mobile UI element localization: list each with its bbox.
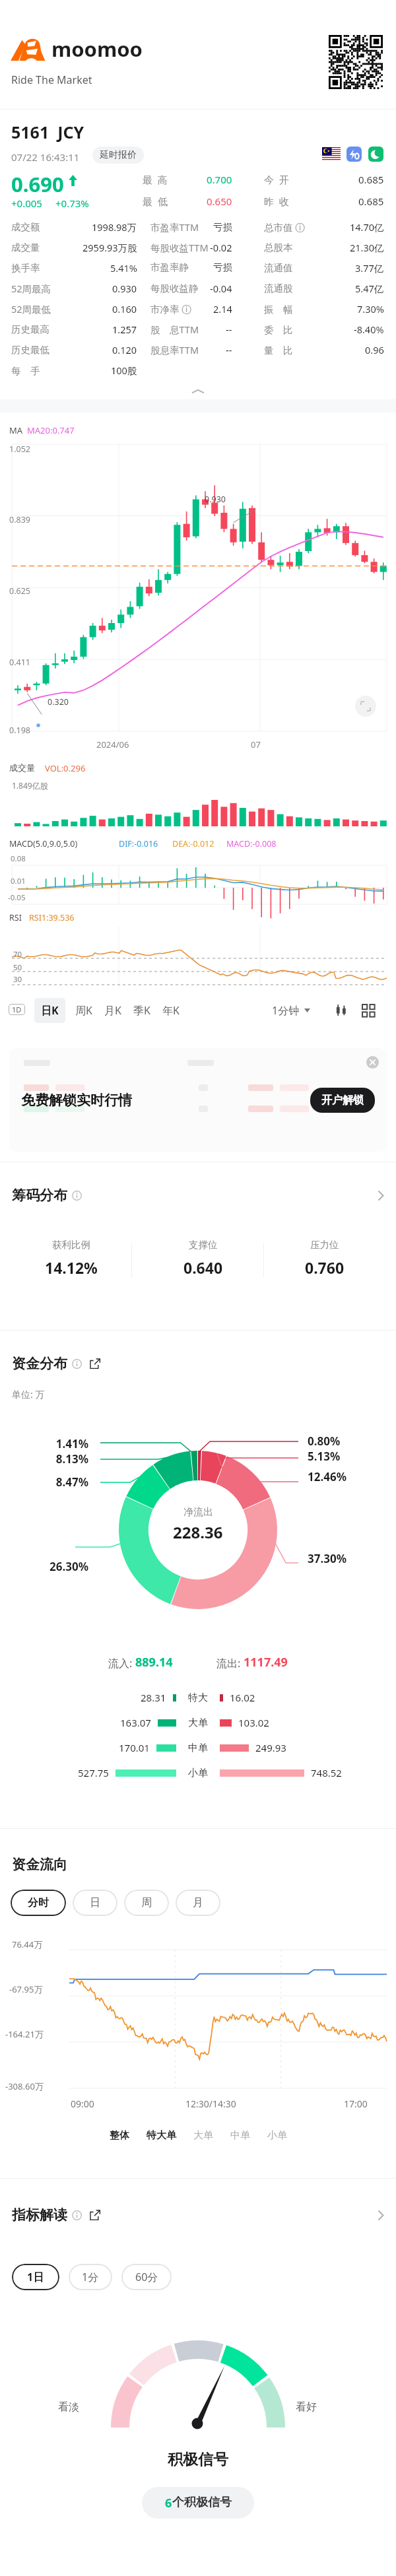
button[interactable]: 免费解锁实时行情 [9,1048,387,1152]
staticText: 特大 [188,1692,208,1704]
button[interactable]: 筹码分布 [0,1187,396,1204]
staticText: 100股 [111,364,137,377]
staticText: 5.41% [110,261,137,275]
button[interactable]: Level 0 quotes [346,147,362,162]
button[interactable]: 季K [127,998,157,1023]
staticText: 月 [193,1896,203,1909]
staticText: 09:00 [71,2097,94,2110]
staticText: 1分钟 [272,1003,300,1018]
staticText: 昨 收 [264,195,289,208]
staticText: 748.52 [311,1766,342,1779]
staticText: 0.685 [358,173,384,186]
button[interactable]: 分时 [11,1890,66,1916]
button[interactable]: 资金分布 [0,1355,396,1372]
staticText: -0.04 [210,282,232,295]
button[interactable]: Share [90,2210,100,2220]
staticText: 5.47亿 [355,282,384,295]
staticText: 今 开 [264,173,289,186]
staticText: 每股收益静 [150,282,199,294]
staticText: 21.30亿 [350,241,384,254]
staticText: 市净率 ⓘ [150,302,191,315]
staticText: 成交量 [11,242,40,253]
button[interactable]: 月K [98,998,128,1023]
staticText: 总市值 ⓘ [264,220,305,234]
button[interactable]: Collapse details [189,387,207,396]
staticText: 76.44万 [12,1938,43,1950]
staticText: 5.13% [308,1449,341,1464]
staticText: MACD(5.0,9.0,5.0) [9,838,78,849]
button[interactable]: 大单 [185,2127,222,2144]
other: Malaysia market [322,147,341,161]
staticText: 成交额 [11,221,40,233]
button[interactable]: 周K [69,998,99,1023]
staticText: 中单 [188,1742,208,1754]
button[interactable]: 月 [176,1890,220,1916]
staticText: 周 [141,1896,152,1909]
button[interactable]: 日K [34,998,65,1023]
staticText: 28.31 [141,1691,166,1704]
button[interactable]: 1日 [12,2264,59,2290]
button[interactable]: 1分钟 [268,998,314,1023]
button[interactable]: 开户解锁 [310,1088,375,1113]
staticText: +0.005 [11,197,42,210]
button[interactable]: 指标解读 [0,2206,396,2224]
staticText: 每股收益TTM [150,241,209,254]
staticText: 0.01 [11,876,26,886]
staticText: 1998.98万 [92,220,137,234]
button[interactable]: Extended hours [368,147,383,162]
staticText: 日K [41,1003,59,1018]
staticText: -164.21万 [5,2028,44,2040]
staticText: 12:30/14:30 [185,2097,236,2110]
staticText: 分时 [28,1896,49,1909]
staticText: 2024/06 [96,739,129,750]
staticText: 看淡 [58,2400,79,2414]
staticText: 8.13% [55,1451,88,1467]
staticText: 527.75 [78,1766,109,1779]
staticText: DEA:-0.012 [172,838,214,849]
staticText: 0.08 [11,853,26,864]
staticText: 16.02 [230,1691,255,1704]
staticText: 看好 [296,2400,317,2414]
staticText: 0.685 [358,195,384,208]
button[interactable]: 60分 [121,2264,172,2290]
staticText: 0.839 [9,514,30,525]
button[interactable]: Close promotion [366,1056,379,1069]
button[interactable]: 整体 [101,2127,138,2144]
staticText: RSI1:39.536 [29,912,75,923]
staticText: 小单 [267,2129,287,2142]
staticText: 14.12% [45,1257,98,1278]
other: See more [378,2210,384,2221]
button[interactable]: 日 [73,1890,117,1916]
staticText: 70 [13,949,22,960]
button[interactable]: 1分 [69,2264,112,2290]
button[interactable]: 特大单 [138,2127,185,2144]
staticText: 净流出 [183,1506,213,1519]
button[interactable]: 周 [124,1890,169,1916]
staticText: 委 比 [264,323,293,336]
staticText: 市盈率TTM [150,220,199,234]
staticText: -0.05 [8,892,26,903]
staticText: 26.30% [49,1559,88,1574]
staticText: 单位: 万 [12,1388,45,1401]
staticText: 月K [104,1003,121,1018]
staticText: 889.14 [135,1654,173,1670]
staticText: 季K [133,1003,150,1018]
staticText: 2959.93万股 [82,241,137,254]
button[interactable]: 6 [142,2487,254,2519]
staticText: 1日 [27,2270,44,2284]
button[interactable]: 年K [156,998,186,1023]
staticText: 1.849亿股 [12,780,48,791]
button[interactable]: 小单 [259,2127,296,2144]
button[interactable]: Candle style [331,1000,352,1020]
button[interactable]: 1 day [9,1004,25,1015]
staticText: 6 [165,2495,172,2511]
staticText: 历史最高 [11,323,49,335]
button[interactable]: Share [90,1358,100,1369]
button[interactable]: Chart layouts [358,1000,378,1020]
staticText: -- [226,323,232,336]
button[interactable]: 中单 [222,2127,259,2144]
button[interactable]: 延时报价 [92,147,144,164]
staticText: 103.02 [238,1716,269,1729]
staticText: 流入: [108,1656,135,1670]
staticText: 股息率TTM [150,343,199,356]
